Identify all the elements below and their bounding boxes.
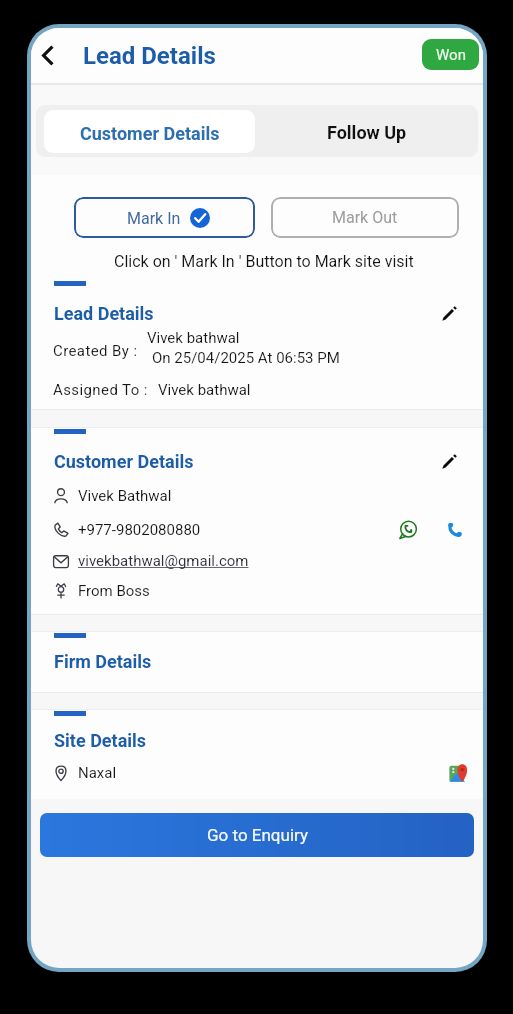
staticText: Mark Out [332, 208, 398, 227]
staticText: Won [436, 46, 466, 64]
staticText: Customer Details [80, 123, 220, 144]
staticText: Lead Details [54, 303, 154, 324]
staticText: Follow Up [327, 122, 407, 143]
button[interactable]: Follow Up [260, 110, 473, 153]
staticText: Lead Details [83, 42, 216, 70]
staticText: Click on ' Mark In ' Button to Mark site… [114, 252, 414, 271]
staticText: Firm Details [54, 651, 152, 672]
button[interactable]: Mark In [74, 197, 255, 238]
staticText: vivekbathwal@gmail.com [78, 552, 249, 570]
button[interactable]: Customer Details [44, 110, 255, 153]
staticText: On 25/04/2025 At 06:53 PM [152, 349, 340, 367]
staticText: Vivek bathwal [147, 329, 240, 347]
staticText: From Boss [78, 582, 150, 600]
staticText: Customer Details [54, 451, 194, 472]
staticText: Go to Enquiry [207, 825, 308, 845]
button[interactable]: Edit [436, 300, 463, 327]
staticText: Site Details [54, 730, 147, 751]
button[interactable]: Edit [436, 448, 463, 475]
button[interactable]: Mark Out [271, 197, 459, 238]
button[interactable]: Open in Maps [446, 760, 472, 786]
button[interactable]: WhatsApp [394, 516, 422, 544]
staticText: Mark In [127, 209, 181, 228]
button[interactable]: Call [441, 516, 469, 544]
button[interactable]: Won [422, 39, 479, 70]
button[interactable]: Go to Enquiry [40, 813, 474, 857]
staticText: Vivek bathwal [158, 381, 251, 399]
staticText: Created By : [53, 342, 138, 360]
staticText: Vivek Bathwal [78, 487, 172, 505]
staticText: Naxal [78, 764, 117, 782]
staticText: +977-9802080880 [78, 521, 201, 539]
button[interactable]: Back [39, 39, 56, 71]
staticText: Assigned To : [53, 381, 148, 399]
